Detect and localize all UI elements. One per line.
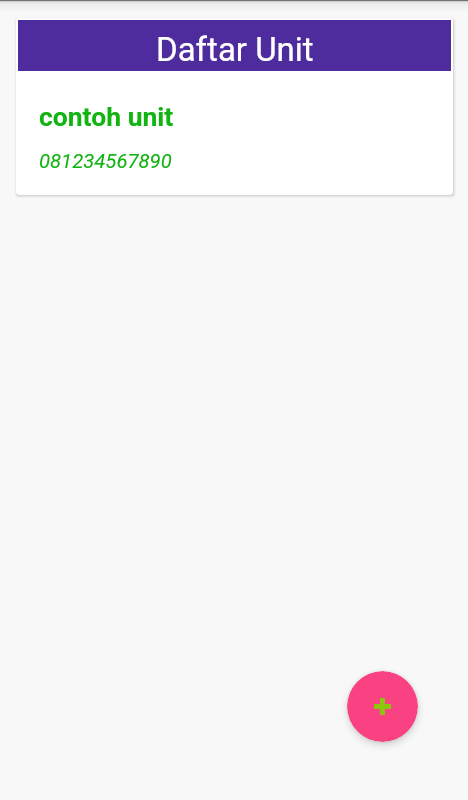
staticText: 081234567890 [39, 149, 172, 173]
staticText: Daftar Unit [156, 30, 314, 69]
button[interactable]: Daftar Unit [16, 18, 453, 195]
staticText: contoh unit [39, 101, 174, 132]
button[interactable]: Add unit [347, 671, 418, 742]
